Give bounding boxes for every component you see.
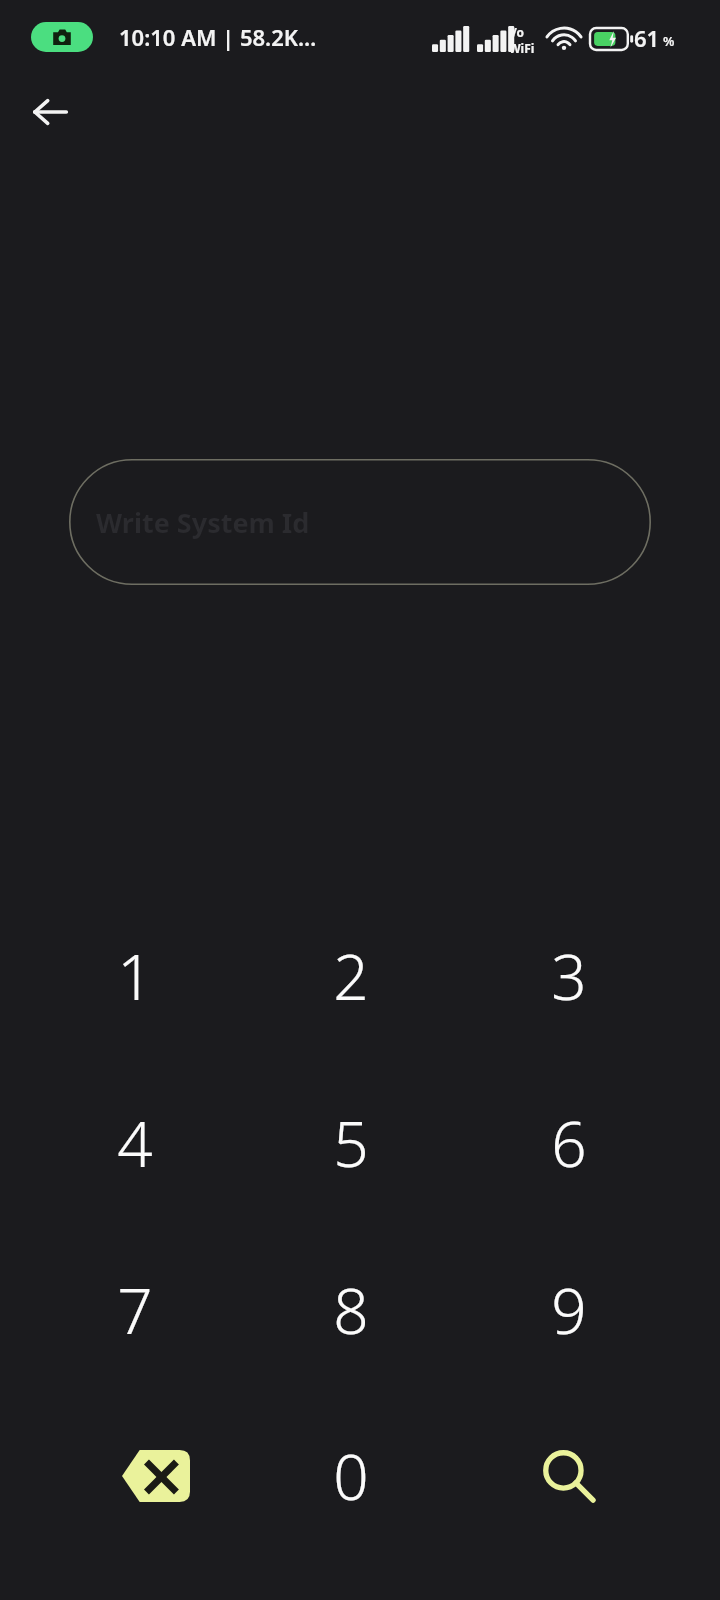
button[interactable]: 8 xyxy=(243,1227,459,1393)
staticText: 0 xyxy=(333,1434,369,1518)
button[interactable]: 7 xyxy=(27,1227,243,1393)
button[interactable]: Back xyxy=(14,76,86,148)
button[interactable]: 5 xyxy=(243,1060,459,1226)
staticText: 1 xyxy=(117,934,153,1018)
staticText: Vo xyxy=(509,24,525,40)
button[interactable]: 0 xyxy=(243,1393,459,1559)
button[interactable]: 1 xyxy=(27,893,243,1059)
staticText: 4 xyxy=(117,1101,153,1185)
staticText: 61 xyxy=(634,23,660,53)
staticText: 6 xyxy=(551,1101,587,1185)
button[interactable]: Write System Id xyxy=(69,459,651,585)
staticText: 10:10 AM | 58.2K… xyxy=(119,22,317,52)
staticText: % xyxy=(663,32,675,50)
button[interactable]: 9 xyxy=(461,1227,677,1393)
staticText: 2 xyxy=(333,934,369,1018)
staticText: 5 xyxy=(333,1101,369,1185)
button[interactable]: Backspace xyxy=(27,1393,243,1559)
button[interactable]: 4 xyxy=(27,1060,243,1226)
button[interactable]: Search xyxy=(461,1393,677,1559)
button[interactable]: 2 xyxy=(243,893,459,1059)
button[interactable]: 3 xyxy=(461,893,677,1059)
staticText: Write System Id xyxy=(96,504,310,541)
staticText: 3 xyxy=(551,934,587,1018)
staticText: 7 xyxy=(117,1268,153,1352)
staticText: WiFi xyxy=(509,40,535,56)
staticText: 9 xyxy=(551,1268,587,1352)
staticText: 8 xyxy=(333,1268,369,1352)
button[interactable]: 6 xyxy=(461,1060,677,1226)
